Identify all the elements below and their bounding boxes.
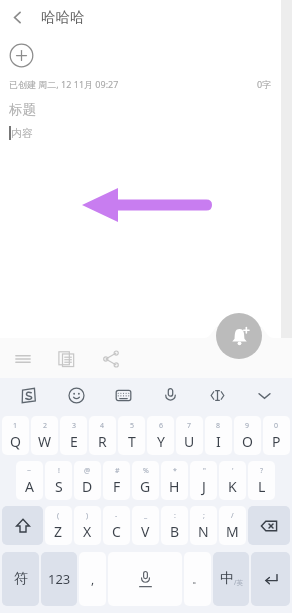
staticText: P: [272, 432, 281, 451]
button[interactable]: ~: [16, 461, 43, 500]
button[interactable]: 2: [31, 416, 58, 455]
button[interactable]: 9: [234, 416, 261, 455]
button[interactable]: !: [45, 461, 72, 500]
button[interactable]: Space: [108, 552, 182, 606]
staticText: 标题: [9, 101, 36, 118]
button[interactable]: _: [132, 506, 159, 545]
staticText: G: [140, 477, 151, 496]
button[interactable]: 。: [184, 552, 211, 606]
button[interactable]: Input method: [4, 378, 52, 413]
staticText: N: [198, 522, 209, 541]
staticText: R: [98, 432, 107, 451]
staticText: I: [216, 432, 221, 451]
button[interactable]: Voice input: [147, 378, 194, 413]
button[interactable]: Add: [9, 43, 34, 68]
staticText: L: [258, 477, 266, 496]
button[interactable]: ;: [190, 506, 217, 545]
button[interactable]: ): [74, 506, 101, 545]
button[interactable]: /: [219, 506, 246, 545]
staticText: 哈哈哈: [41, 8, 85, 26]
staticText: :: [174, 511, 176, 521]
staticText: 6: [159, 421, 164, 431]
staticText: 内容: [11, 126, 33, 140]
button[interactable]: -: [103, 506, 130, 545]
staticText: _: [144, 511, 148, 521]
staticText: -: [115, 511, 118, 521]
button[interactable]: Share: [96, 344, 126, 374]
staticText: E: [70, 432, 78, 451]
staticText: ,: [91, 571, 95, 587]
button[interactable]: 中: [213, 552, 249, 606]
staticText: 已创建 周二, 12 11月 09:27: [9, 78, 119, 90]
button[interactable]: Emoji: [52, 378, 100, 413]
button[interactable]: :: [161, 506, 188, 545]
button[interactable]: ': [219, 461, 246, 500]
staticText: Q: [10, 432, 21, 451]
staticText: ': [232, 466, 234, 476]
staticText: 5: [130, 421, 135, 431]
button[interactable]: Shift: [2, 506, 43, 545]
button[interactable]: #: [103, 461, 130, 500]
staticText: 1: [13, 421, 18, 431]
staticText: U: [184, 432, 195, 451]
button[interactable]: ,: [79, 552, 106, 606]
staticText: K: [228, 477, 237, 496]
staticText: O: [242, 432, 253, 451]
button[interactable]: @: [74, 461, 101, 500]
button[interactable]: 123: [41, 552, 77, 606]
button[interactable]: 7: [176, 416, 203, 455]
staticText: W: [38, 432, 52, 451]
staticText: B: [170, 522, 180, 541]
staticText: 2: [43, 421, 48, 431]
button[interactable]: 4: [89, 416, 116, 455]
staticText: V: [141, 522, 150, 541]
staticText: Z: [54, 522, 63, 541]
staticText: 123: [48, 570, 71, 588]
button[interactable]: Back: [0, 0, 34, 34]
button[interactable]: 6: [147, 416, 174, 455]
staticText: ): [86, 511, 89, 521]
staticText: ": [203, 466, 206, 476]
staticText: C: [112, 522, 121, 541]
staticText: A: [25, 477, 34, 496]
staticText: H: [169, 477, 180, 496]
staticText: 8: [216, 421, 221, 431]
button[interactable]: Backspace: [248, 506, 290, 545]
button[interactable]: ": [190, 461, 217, 500]
staticText: J: [202, 477, 206, 496]
button[interactable]: 3: [60, 416, 87, 455]
button[interactable]: *: [161, 461, 188, 500]
staticText: X: [83, 522, 92, 541]
button[interactable]: 0: [263, 416, 290, 455]
staticText: ;: [203, 511, 205, 521]
button[interactable]: 5: [118, 416, 145, 455]
staticText: #: [115, 466, 120, 476]
staticText: D: [82, 477, 93, 496]
button[interactable]: ?: [248, 461, 275, 500]
staticText: ?: [260, 466, 264, 476]
button[interactable]: Add reminder: [216, 313, 262, 359]
staticText: *: [173, 466, 177, 476]
staticText: /: [231, 511, 234, 521]
staticText: 中: [220, 570, 234, 588]
button[interactable]: Hide keyboard: [241, 378, 288, 413]
staticText: 符: [14, 570, 28, 588]
staticText: M: [226, 522, 239, 541]
staticText: 9: [245, 421, 250, 431]
staticText: /英: [234, 578, 243, 587]
staticText: S: [55, 477, 63, 496]
button[interactable]: Keyboard layout: [100, 378, 147, 413]
button[interactable]: Notes: [52, 344, 82, 374]
button[interactable]: (: [45, 506, 72, 545]
staticText: !: [58, 466, 60, 476]
staticText: Y: [157, 432, 165, 451]
button[interactable]: %: [132, 461, 159, 500]
button[interactable]: 8: [205, 416, 232, 455]
staticText: @: [84, 466, 91, 476]
button[interactable]: 1: [2, 416, 29, 455]
button[interactable]: Enter: [251, 552, 290, 606]
button[interactable]: Menu: [8, 344, 38, 374]
button[interactable]: Move cursor: [194, 378, 241, 413]
staticText: 7: [187, 421, 192, 431]
button[interactable]: 符: [2, 552, 39, 606]
